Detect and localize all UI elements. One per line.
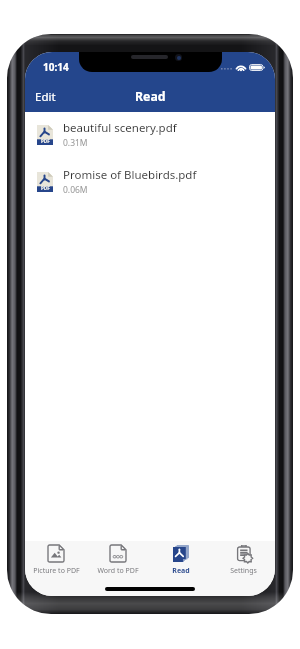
- staticText: Settings: [230, 566, 257, 576]
- staticText: Promise of Bluebirds.pdf: [63, 167, 197, 183]
- staticText: Read: [135, 88, 166, 105]
- button[interactable]: Edit: [25, 81, 66, 112]
- staticText: Picture to PDF: [33, 566, 80, 576]
- staticText: beautiful scenery.pdf: [63, 120, 177, 136]
- button[interactable]: Picture to PDF: [25, 545, 87, 576]
- staticText: 0.31M: [63, 137, 88, 149]
- staticText: Edit: [35, 89, 56, 105]
- button[interactable]: PDF: [25, 112, 275, 159]
- staticText: 10:14: [43, 60, 69, 74]
- staticText: Read: [172, 566, 190, 576]
- button[interactable]: Read: [149, 545, 212, 576]
- staticText: Word to PDF: [97, 566, 139, 576]
- button[interactable]: Settings: [212, 545, 275, 576]
- button[interactable]: Word to PDF: [87, 545, 149, 576]
- button[interactable]: PDF: [25, 159, 275, 206]
- staticText: PDF: [41, 138, 50, 144]
- staticText: PDF: [41, 185, 50, 191]
- staticText: 0.06M: [63, 184, 88, 196]
